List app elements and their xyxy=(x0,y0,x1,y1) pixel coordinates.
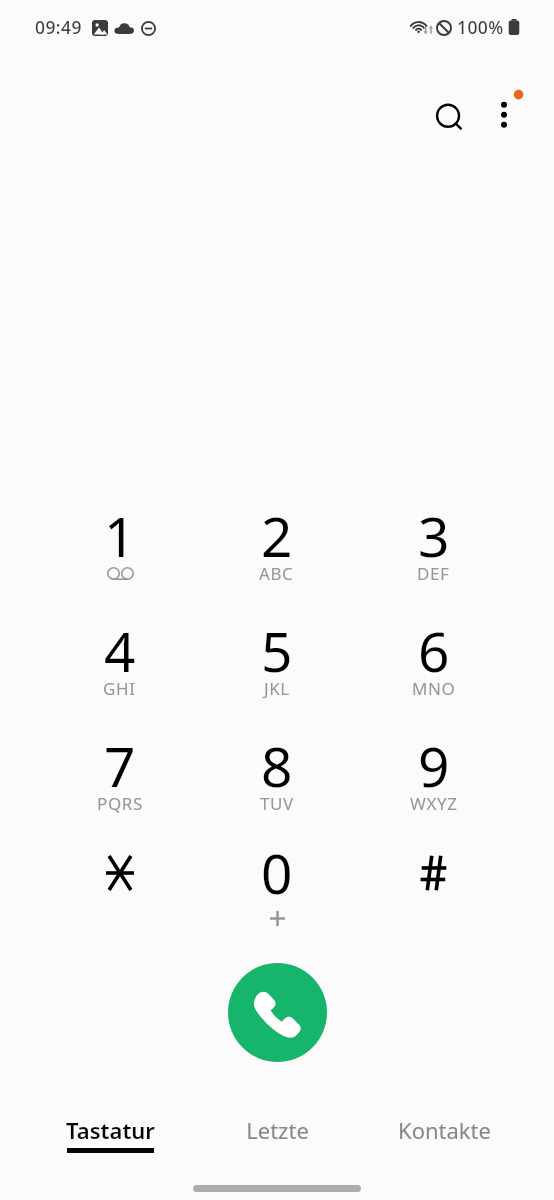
button[interactable]: Star xyxy=(41,835,198,950)
button[interactable]: 5 xyxy=(198,613,355,728)
button[interactable]: 1 xyxy=(41,498,198,613)
staticText: ABC xyxy=(259,562,294,585)
staticText: JKL xyxy=(264,677,290,700)
button[interactable]: Hash xyxy=(355,835,512,950)
staticText: MNO xyxy=(412,677,456,700)
staticText: 4 xyxy=(104,613,136,688)
staticText: Kontakte xyxy=(398,1115,491,1145)
button[interactable]: 2 xyxy=(198,498,355,613)
staticText: TUV xyxy=(260,792,294,815)
staticText: 2 xyxy=(261,498,293,573)
staticText: 6 xyxy=(418,613,450,688)
staticText: Letzte xyxy=(246,1115,309,1145)
button[interactable]: Call xyxy=(228,963,327,1062)
button[interactable]: Letzte xyxy=(194,1115,361,1163)
staticText: PQRS xyxy=(97,792,143,815)
button[interactable]: Kontakte xyxy=(361,1115,528,1163)
button[interactable]: 0 xyxy=(198,835,355,950)
staticText: GHI xyxy=(103,677,136,700)
button[interactable]: Search xyxy=(426,94,474,142)
staticText: 3 xyxy=(418,498,450,573)
button[interactable]: 7 xyxy=(41,728,198,835)
button[interactable]: 3 xyxy=(355,498,512,613)
button[interactable]: 8 xyxy=(198,728,355,835)
staticText: 09:49 xyxy=(35,15,82,39)
staticText: 8 xyxy=(261,728,293,803)
button[interactable]: 6 xyxy=(355,613,512,728)
staticText: WXYZ xyxy=(410,792,458,815)
staticText: 7 xyxy=(104,728,136,803)
staticText: DEF xyxy=(417,562,450,585)
button[interactable]: 9 xyxy=(355,728,512,835)
button[interactable]: More options xyxy=(480,91,528,139)
staticText: 0 xyxy=(261,835,293,910)
staticText: 1 xyxy=(104,498,136,573)
button[interactable]: Tastatur xyxy=(26,1115,194,1163)
staticText: 9 xyxy=(418,728,450,803)
button[interactable]: 4 xyxy=(41,613,198,728)
staticText: 5 xyxy=(261,613,293,688)
staticText: Tastatur xyxy=(66,1115,155,1145)
staticText: 100% xyxy=(457,15,504,39)
